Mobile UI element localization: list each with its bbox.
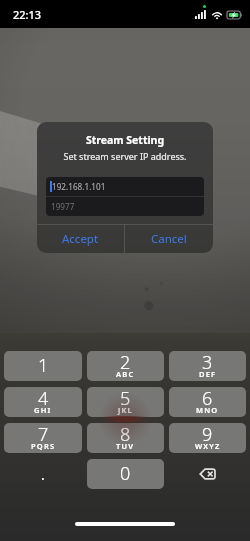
staticText: 22:13 — [13, 7, 42, 22]
staticText: 4 — [38, 387, 49, 411]
button[interactable]: 5 — [87, 387, 164, 417]
staticText: Set stream server IP address. — [37, 150, 213, 162]
button[interactable]: 0 — [87, 459, 164, 489]
staticText: ABC — [116, 369, 135, 379]
staticText: 0 — [120, 461, 131, 486]
button[interactable]: 3 — [169, 351, 246, 381]
staticText: . — [41, 465, 45, 484]
staticText: JKL — [118, 405, 133, 415]
staticText: 2 — [120, 351, 131, 375]
button[interactable]: 9 — [169, 423, 246, 453]
staticText: Accept — [62, 231, 99, 247]
staticText: 9 — [202, 423, 213, 447]
staticText: Cancel — [151, 231, 187, 247]
staticText: 8 — [120, 423, 131, 447]
button[interactable]: 1 — [4, 351, 82, 381]
staticText: PQRS — [31, 441, 56, 451]
staticText: DEF — [199, 369, 217, 379]
staticText: 3 — [202, 351, 213, 375]
button[interactable]: 19977 — [46, 197, 204, 216]
button[interactable]: Cancel — [125, 225, 213, 253]
button[interactable]: . — [4, 459, 82, 489]
button[interactable]: 7 — [4, 423, 82, 453]
button[interactable]: Backspace — [169, 459, 246, 489]
staticText: 7 — [38, 423, 49, 447]
button[interactable]: 6 — [169, 387, 246, 417]
staticText: 1 — [38, 353, 49, 378]
button[interactable]: 8 — [87, 423, 164, 453]
staticText: Stream Setting — [37, 133, 213, 147]
staticText: WXYZ — [195, 441, 221, 451]
button[interactable]: 192.168.1.101 — [46, 177, 204, 196]
staticText: MNO — [196, 405, 219, 415]
staticText: 192.168.1.101 — [52, 181, 106, 192]
button[interactable]: Accept — [37, 225, 124, 253]
staticText: TUV — [116, 441, 135, 451]
staticText: 19977 — [51, 201, 75, 212]
button[interactable]: 4 — [4, 387, 82, 417]
staticText: 5 — [120, 387, 131, 411]
staticText: GHI — [34, 405, 52, 415]
button[interactable]: 2 — [87, 351, 164, 381]
staticText: 6 — [202, 387, 213, 411]
